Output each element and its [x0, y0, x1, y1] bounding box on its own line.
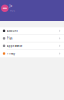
- button[interactable]: Appearance: [0, 42, 64, 50]
- button[interactable]: Plan: [0, 35, 64, 42]
- staticText: Privacy: [7, 52, 15, 55]
- staticText: Jo: [9, 4, 12, 8]
- button[interactable]: Account: [0, 27, 64, 35]
- staticText: Account: [7, 29, 18, 33]
- staticText: Plan: [7, 37, 13, 40]
- staticText: Free: [9, 9, 15, 12]
- staticText: Appearance: [7, 44, 23, 48]
- button[interactable]: Privacy: [0, 50, 64, 57]
